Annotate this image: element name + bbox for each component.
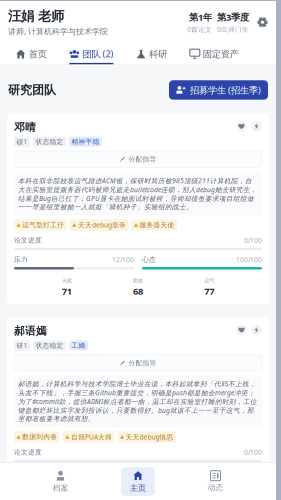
button[interactable]: 关注 <box>236 121 247 132</box>
button[interactable]: 激励 <box>251 121 262 132</box>
staticText: 分配指导 <box>128 155 156 163</box>
staticText: 主页 <box>130 483 146 493</box>
button[interactable]: 档案 <box>43 467 77 496</box>
staticText: 第3季度 <box>217 11 249 23</box>
staticText: 研1 <box>16 341 27 350</box>
staticText: 分配指导 <box>128 359 156 367</box>
staticText: 本科在双非院校靠运气踏进ACM银，保研时简历被985顶级211计算机院，自大在实… <box>18 176 257 211</box>
staticText: 压力 <box>14 255 28 264</box>
button[interactable]: 科研 <box>134 44 169 64</box>
staticText: 自我PUA大师 <box>71 432 112 441</box>
staticText: 邓晴 <box>14 121 36 134</box>
staticText: 团队 (2) <box>82 47 113 60</box>
staticText: 100/100 <box>236 255 262 264</box>
button[interactable]: 分配指导 <box>14 355 262 371</box>
staticText: 招募学生 (招生季) <box>190 84 261 96</box>
button[interactable]: 分配指导 <box>14 151 262 167</box>
staticText: 天天debug慎思 <box>126 432 174 441</box>
button[interactable]: 设置 <box>249 13 268 32</box>
staticText: 心态 <box>142 467 156 476</box>
staticText: 运气 <box>204 489 214 496</box>
staticText: 论文进度 <box>14 236 42 244</box>
staticText: 首页 <box>29 48 47 60</box>
staticText: 数据到内卷 <box>22 433 57 441</box>
button[interactable]: 首页 <box>14 44 48 64</box>
staticText: 汪娟 老师 <box>8 8 64 24</box>
staticText: 讲师, 计算机科学与技术学院 <box>8 26 108 36</box>
staticText: 天赋 <box>62 277 72 284</box>
staticText: 运气 <box>204 277 214 284</box>
button[interactable]: 招募学生 (招生季) <box>169 80 268 100</box>
staticText: 71 <box>62 285 72 297</box>
staticText: 科研 <box>149 48 167 60</box>
staticText: 勤奋 <box>133 489 143 496</box>
staticText: 心态 <box>142 255 156 264</box>
button[interactable]: 团队 (2) <box>69 43 113 64</box>
staticText: 勤奋 <box>133 277 143 284</box>
staticText: 动态 <box>207 483 223 492</box>
staticText: 论文进度 <box>14 448 42 456</box>
staticText: 服务器天使 <box>140 221 175 229</box>
staticText: 12/100 <box>112 255 134 264</box>
button[interactable]: 动态 <box>198 468 232 495</box>
staticText: 状态稳定 <box>35 341 63 349</box>
staticText: 工嫡 <box>71 341 85 349</box>
staticText: 档案 <box>52 483 68 493</box>
staticText: 0/100 <box>244 448 262 457</box>
staticText: 硕1 <box>16 137 27 146</box>
staticText: 固定资产 <box>203 48 239 60</box>
button[interactable]: 固定资产 <box>190 44 239 64</box>
button[interactable]: 主页 <box>121 467 155 496</box>
staticText: 第1年 <box>189 11 212 23</box>
staticText: 8/100 <box>116 467 134 476</box>
staticText: 77 <box>204 285 214 297</box>
staticText: 精神平稳 <box>71 138 99 146</box>
staticText: 运气型打工仔 <box>22 221 64 229</box>
button[interactable]: 激励 <box>251 324 262 335</box>
staticText: 0出师门生 <box>217 25 249 34</box>
button[interactable]: 关注 <box>236 324 247 335</box>
staticText: 0/100 <box>244 236 262 245</box>
staticText: 68 <box>133 285 143 297</box>
staticText: 研究团队 <box>8 83 56 97</box>
staticText: 天天debug皇帝 <box>78 221 126 229</box>
staticText: 状态稳定 <box>35 138 63 146</box>
staticText: 0篇论文 <box>187 25 212 34</box>
staticText: 天赋 <box>62 489 72 496</box>
staticText: 郝语嫣 <box>14 324 47 337</box>
staticText: 郝语嫣，计算机科学与技术学院博士毕业在读，本科起就拿到「代码不上线，头发不下线」… <box>18 380 257 423</box>
